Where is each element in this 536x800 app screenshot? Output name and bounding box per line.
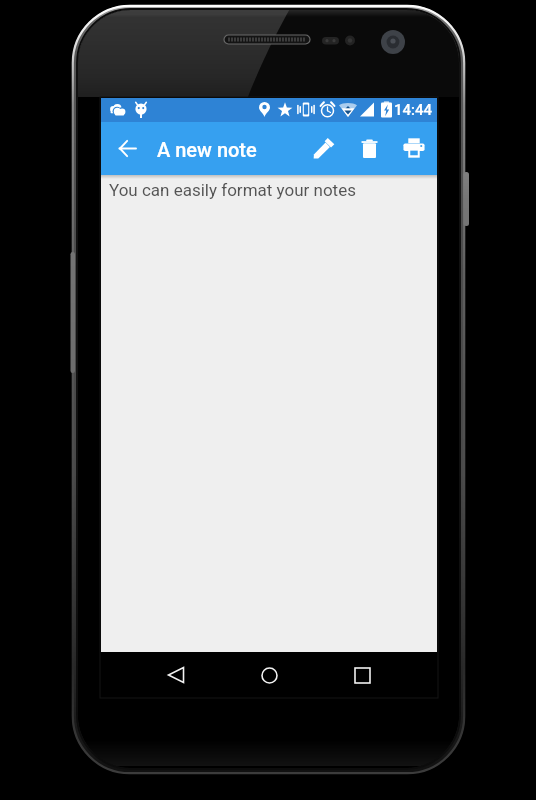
button[interactable]: Edit xyxy=(302,126,346,170)
staticText: A new note xyxy=(157,138,257,161)
button[interactable]: Home xyxy=(247,653,291,697)
staticText: 14:44 xyxy=(394,101,433,119)
button[interactable]: Back xyxy=(154,653,198,697)
button[interactable]: Navigate up xyxy=(105,126,149,170)
button[interactable]: Delete xyxy=(347,126,391,170)
button[interactable]: Recent apps xyxy=(340,653,384,697)
button[interactable]: Print xyxy=(392,126,436,170)
staticText: You can easily format your notes xyxy=(109,180,356,200)
